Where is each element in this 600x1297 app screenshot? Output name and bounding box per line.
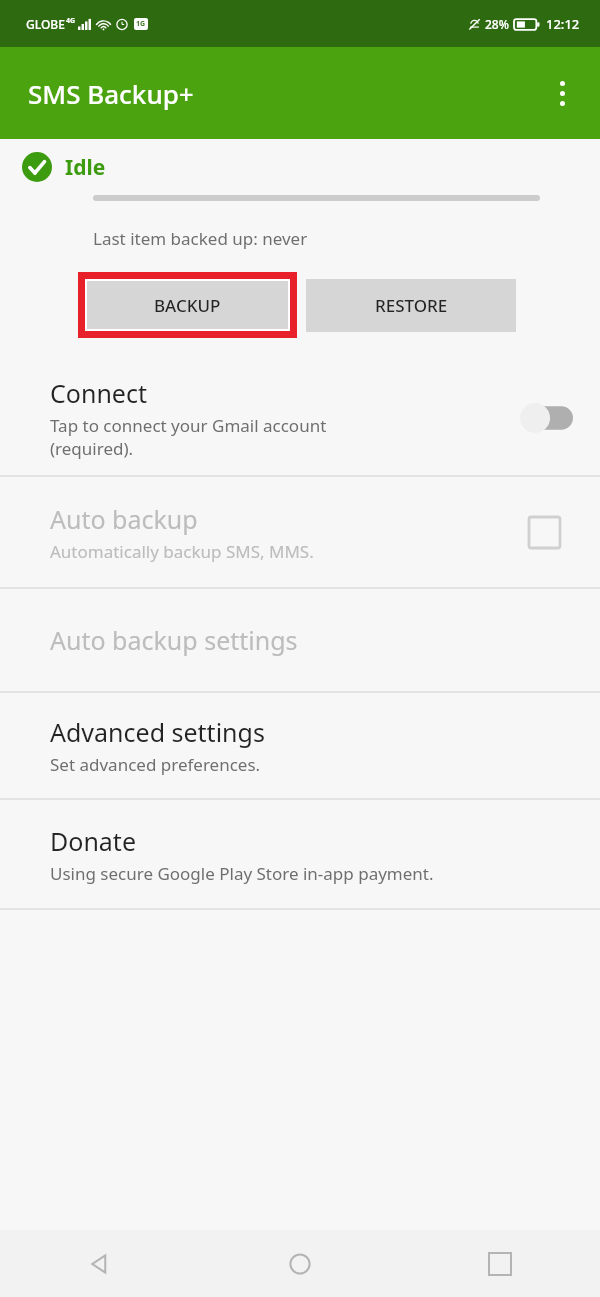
button[interactable]: Auto backup settings <box>0 589 600 691</box>
staticText: BACKUP <box>154 294 221 317</box>
staticText: Idle <box>65 153 106 182</box>
staticText: Automatically backup SMS, MMS. <box>50 540 314 563</box>
staticText: Advanced settings <box>50 715 265 749</box>
staticText: Donate <box>50 824 136 858</box>
staticText: 1G <box>136 19 146 29</box>
other: Auto backup checkbox <box>522 510 566 554</box>
button[interactable]: Home <box>200 1230 400 1297</box>
staticText: Auto backup <box>50 502 198 536</box>
staticText: Tap to connect your Gmail account (requi… <box>50 414 327 460</box>
staticText: 4G <box>66 16 76 26</box>
button[interactable]: Auto backup <box>0 477 600 587</box>
button[interactable]: BACKUP <box>87 281 288 329</box>
button[interactable]: Donate <box>0 800 600 908</box>
button[interactable]: More options <box>538 69 586 117</box>
button[interactable]: RESTORE <box>306 279 516 332</box>
staticText: Last item backed up: never <box>93 227 308 250</box>
staticText: 28% <box>485 16 509 32</box>
staticText: RESTORE <box>375 294 448 317</box>
button[interactable]: Connect <box>0 360 600 475</box>
staticText: Using secure Google Play Store in-app pa… <box>50 862 434 885</box>
staticText: SMS Backup+ <box>28 76 194 111</box>
staticText: Set advanced preferences. <box>50 753 261 776</box>
staticText: 12:12 <box>546 15 580 33</box>
button[interactable]: Recent apps <box>400 1230 600 1297</box>
staticText: GLOBE <box>26 16 65 32</box>
staticText: Connect <box>50 376 147 410</box>
staticText: Auto backup settings <box>50 623 298 657</box>
button[interactable]: Connect toggle <box>518 398 574 438</box>
button[interactable]: Advanced settings <box>0 693 600 798</box>
button[interactable]: Back <box>0 1230 200 1297</box>
